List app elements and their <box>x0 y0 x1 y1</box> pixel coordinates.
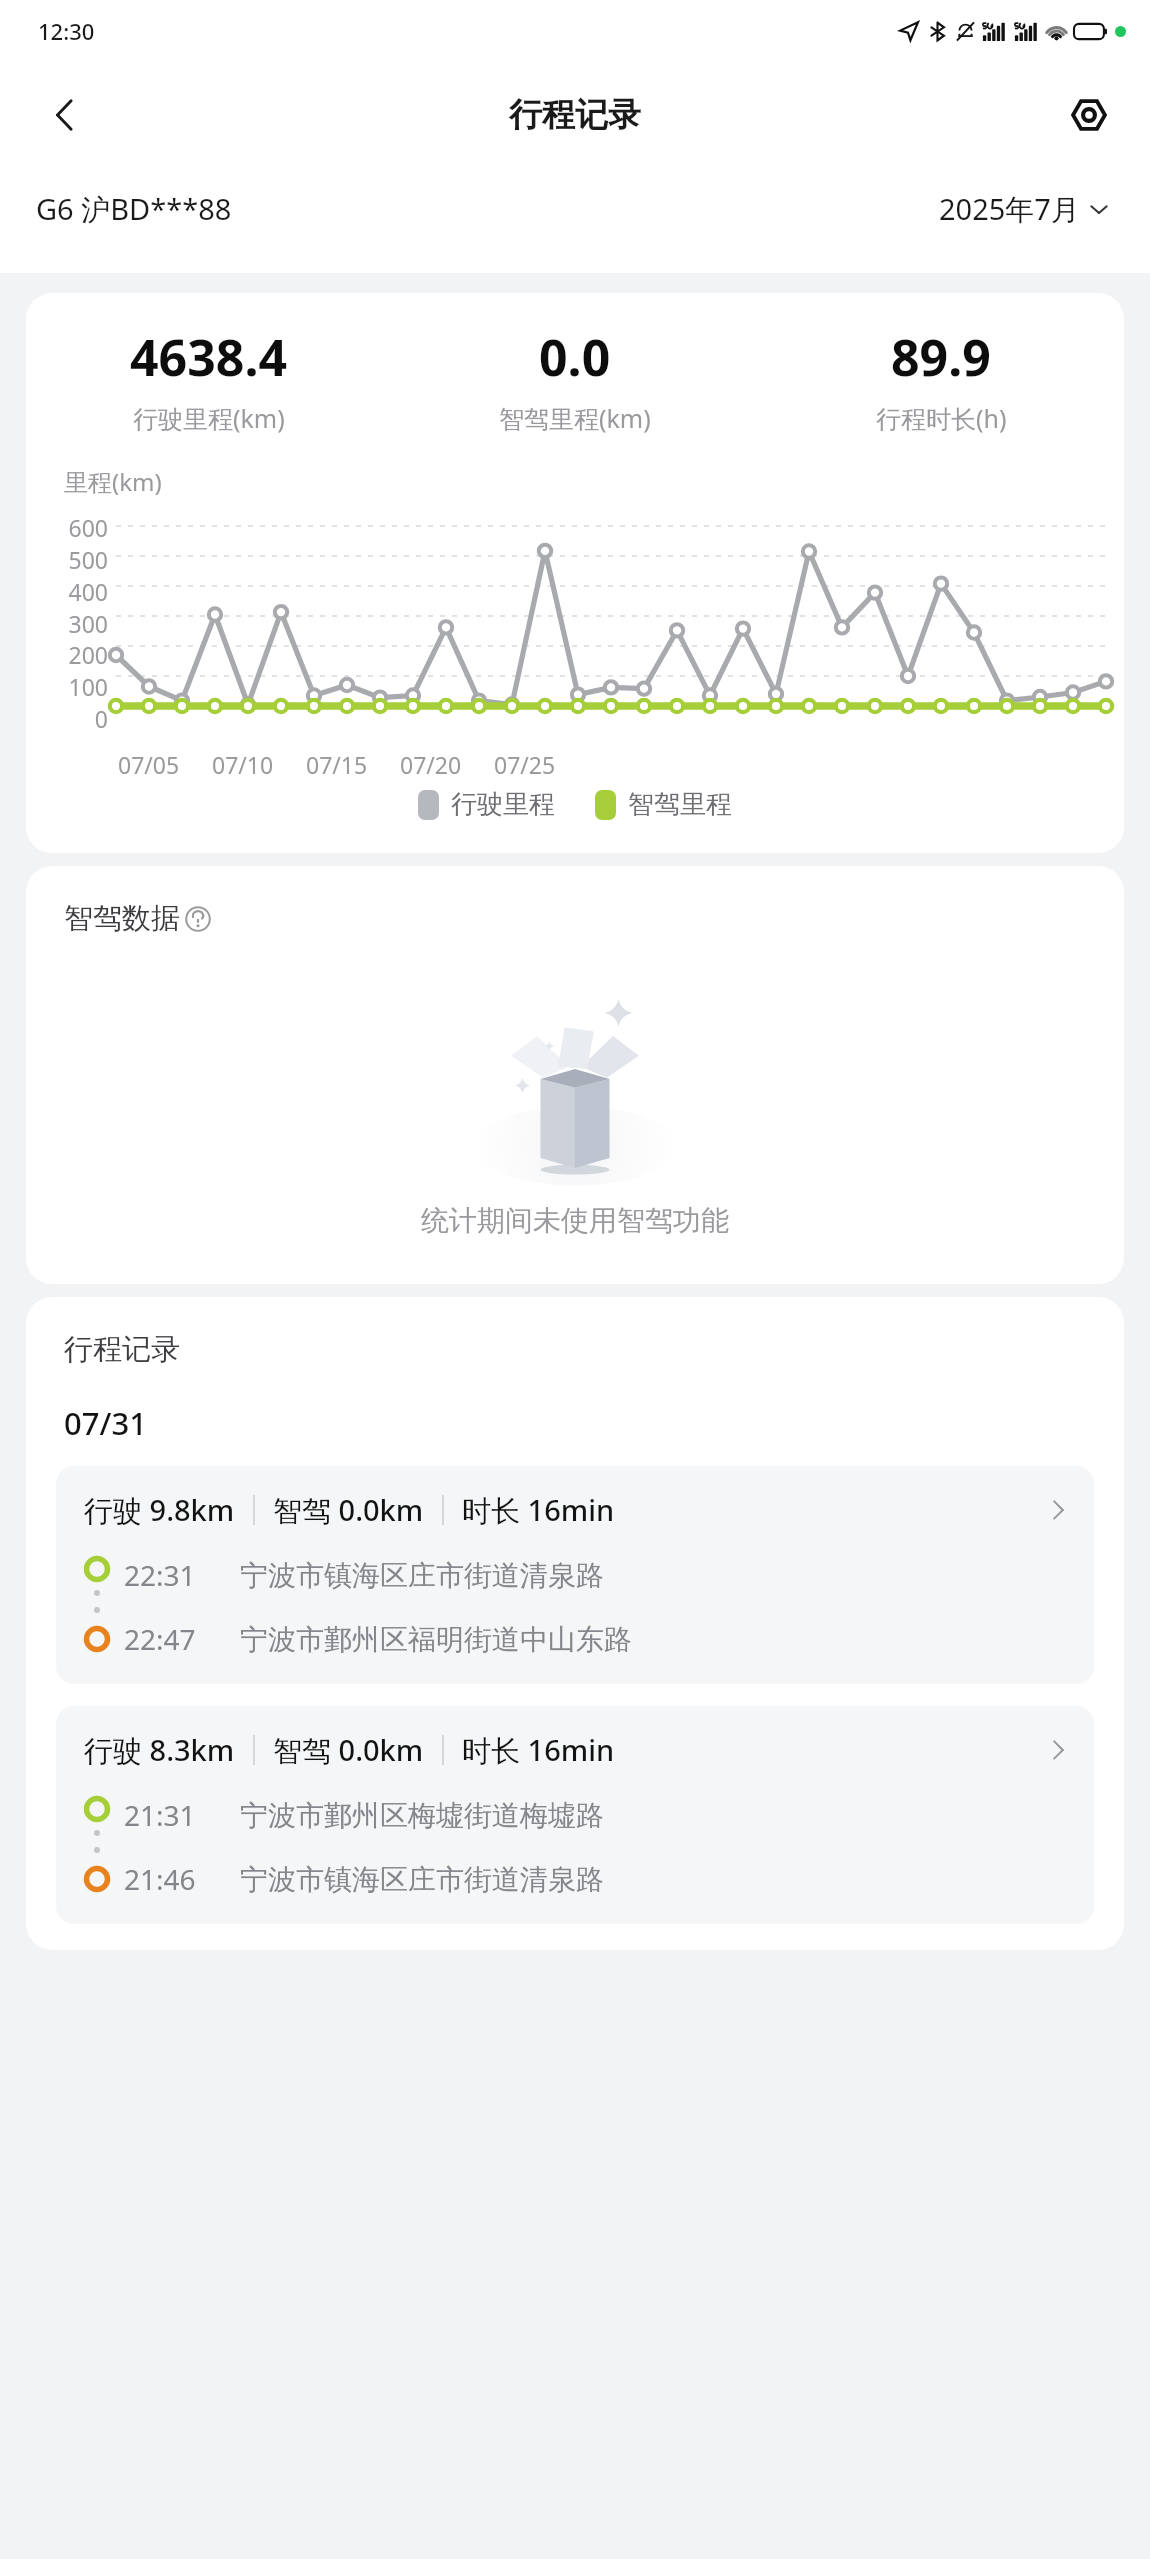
button[interactable]: Back <box>34 84 96 146</box>
staticText: 400 <box>56 576 108 607</box>
staticText: 07/15 <box>306 749 368 780</box>
staticText: 0.0 <box>539 323 611 391</box>
button[interactable]: Settings <box>1058 84 1120 146</box>
staticText: 智驾里程 <box>628 788 732 821</box>
staticText: 07/05 <box>118 749 180 780</box>
staticText: 行程记录 <box>64 1331 180 1368</box>
staticText: 0 <box>56 703 108 734</box>
staticText: 100 <box>56 671 108 702</box>
staticText: 300 <box>56 608 108 639</box>
staticText: 里程(km) <box>64 465 162 498</box>
staticText: 行驶 9.8km <box>84 1490 235 1530</box>
staticText: 07/20 <box>400 749 462 780</box>
staticText: 行驶里程 <box>451 788 555 821</box>
staticText: 智驾 0.0km <box>273 1730 424 1770</box>
staticText: 行程记录 <box>509 94 641 136</box>
staticText: 时长 16min <box>462 1490 615 1530</box>
staticText: 行驶 8.3km <box>84 1730 235 1770</box>
staticText: 89.9 <box>891 323 991 391</box>
staticText: 07/10 <box>212 749 274 780</box>
button[interactable]: 2025年7月 <box>935 181 1114 237</box>
staticText: 行程时长(h) <box>876 401 1007 435</box>
staticText: 600 <box>56 512 108 543</box>
staticText: 智驾数据 <box>64 900 180 937</box>
button[interactable]: 行驶 8.3km <box>56 1706 1094 1924</box>
staticText: 4638.4 <box>130 323 288 391</box>
staticText: 宁波市鄞州区梅墟街道梅墟路 <box>240 1798 604 1833</box>
button[interactable]: 智驾数据 <box>64 900 211 937</box>
staticText: 宁波市鄞州区福明街道中山东路 <box>240 1622 632 1657</box>
staticText: 宁波市镇海区庄市街道清泉路 <box>240 1558 604 1593</box>
staticText: G6 沪BD***88 <box>36 189 232 229</box>
staticText: 时长 16min <box>462 1730 615 1770</box>
staticText: 2025年7月 <box>939 189 1080 229</box>
staticText: 22:31 <box>124 1556 240 1594</box>
staticText: 12:30 <box>38 16 95 46</box>
staticText: 21:46 <box>124 1860 240 1898</box>
button[interactable]: 行驶 9.8km <box>56 1466 1094 1684</box>
staticText: 07/25 <box>494 749 556 780</box>
staticText: 200 <box>56 639 108 670</box>
staticText: 宁波市镇海区庄市街道清泉路 <box>240 1862 604 1897</box>
staticText: 智驾里程(km) <box>499 401 651 435</box>
staticText: 行驶里程(km) <box>133 401 285 435</box>
staticText: 统计期间未使用智驾功能 <box>26 1203 1124 1238</box>
staticText: 21:31 <box>124 1796 240 1834</box>
staticText: 智驾 0.0km <box>273 1490 424 1530</box>
staticText: 07/31 <box>64 1402 147 1444</box>
staticText: 22:47 <box>124 1620 240 1658</box>
staticText: 500 <box>56 544 108 575</box>
